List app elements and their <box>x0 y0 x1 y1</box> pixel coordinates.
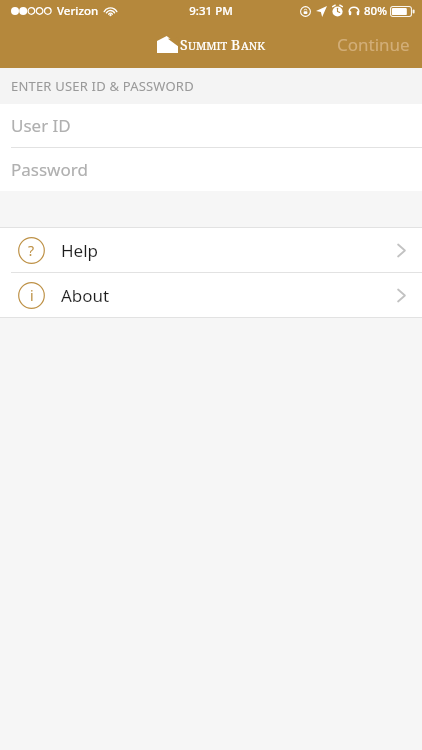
staticText: Password <box>11 158 88 181</box>
button[interactable]: Continue <box>325 25 422 64</box>
staticText: i <box>30 286 34 305</box>
staticText: ? <box>28 241 35 260</box>
staticText: Help <box>61 239 99 262</box>
button[interactable]: i <box>0 273 422 317</box>
staticText: UMMIT <box>188 38 228 53</box>
button[interactable]: ? <box>0 228 422 272</box>
staticText: 9:31 PM <box>189 3 233 19</box>
staticText: Continue <box>337 33 410 56</box>
button[interactable]: User ID <box>0 104 422 147</box>
button[interactable]: Password <box>0 148 422 191</box>
staticText: B <box>231 35 241 54</box>
staticText: 80% <box>364 3 387 19</box>
staticText: About <box>61 284 110 307</box>
staticText: S <box>180 35 188 54</box>
staticText: Verizon <box>57 3 99 19</box>
staticText: ENTER USER ID & PASSWORD <box>11 77 194 95</box>
staticText: User ID <box>11 114 71 137</box>
staticText: ANK <box>241 38 265 53</box>
